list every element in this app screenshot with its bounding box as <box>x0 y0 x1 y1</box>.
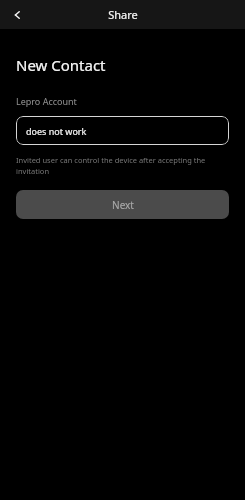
button[interactable]: Back <box>7 4 28 25</box>
button[interactable]: Next <box>16 190 229 219</box>
button[interactable]: does not work <box>16 116 229 145</box>
staticText: Share <box>108 7 138 22</box>
staticText: Lepro Account <box>16 95 77 107</box>
staticText: New Contact <box>16 55 106 75</box>
staticText: Next <box>112 198 134 212</box>
staticText: does not work <box>26 125 87 137</box>
staticText: Invited user can control the device afte… <box>16 155 229 176</box>
